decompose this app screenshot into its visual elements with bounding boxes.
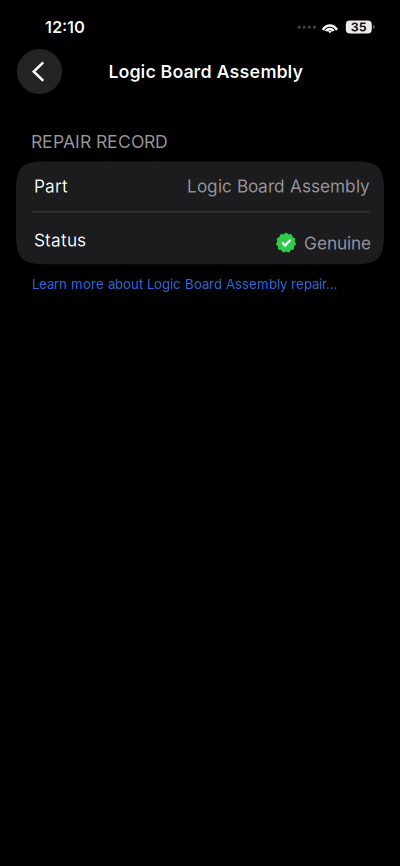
button[interactable]: Back bbox=[17, 49, 62, 94]
staticText: Learn more about Logic Board Assembly re… bbox=[32, 276, 337, 292]
staticText: Status bbox=[34, 230, 86, 251]
button[interactable]: Status bbox=[16, 212, 384, 264]
staticText: 12:10 bbox=[45, 17, 85, 37]
staticText: 35 bbox=[351, 20, 367, 34]
staticText: Genuine bbox=[304, 233, 371, 254]
staticText: REPAIR RECORD bbox=[31, 131, 168, 152]
button[interactable]: Part bbox=[16, 161, 384, 211]
staticText: Part bbox=[34, 176, 68, 197]
button[interactable]: Learn more about Logic Board Assembly re… bbox=[32, 276, 337, 292]
staticText: Logic Board Assembly bbox=[108, 61, 303, 82]
staticText: Logic Board Assembly bbox=[187, 176, 370, 197]
